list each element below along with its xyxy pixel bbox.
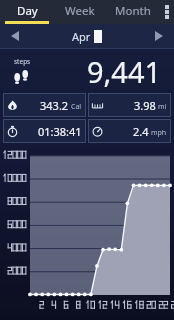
button[interactable]: 3.98: [88, 93, 171, 117]
button[interactable]: 2.4: [88, 119, 171, 143]
staticText: mph: [151, 128, 167, 138]
button[interactable]: More options: [160, 0, 174, 24]
staticText: 3.98: [134, 98, 156, 113]
staticText: steps: [14, 57, 31, 66]
staticText: 9,441: [87, 52, 162, 91]
staticText: 2.4: [133, 124, 149, 139]
staticText: 343.2: [40, 98, 69, 113]
button[interactable]: Month: [106, 0, 160, 24]
staticText: Week: [65, 3, 95, 19]
staticText: Cal: [71, 102, 82, 112]
staticText: Day: [17, 3, 38, 19]
button[interactable]: 343.2: [3, 93, 86, 117]
staticText: mi: [158, 102, 167, 112]
staticText: Month: [115, 3, 151, 19]
button[interactable]: Previous: [0, 24, 30, 48]
button[interactable]: Next: [144, 24, 174, 48]
button[interactable]: 01:38:41: [3, 119, 86, 143]
staticText: Apr: [72, 29, 91, 44]
button[interactable]: steps: [0, 49, 174, 93]
staticText: 01:38:41: [38, 124, 82, 139]
button[interactable]: Week: [54, 0, 106, 24]
button[interactable]: Day: [0, 0, 54, 24]
